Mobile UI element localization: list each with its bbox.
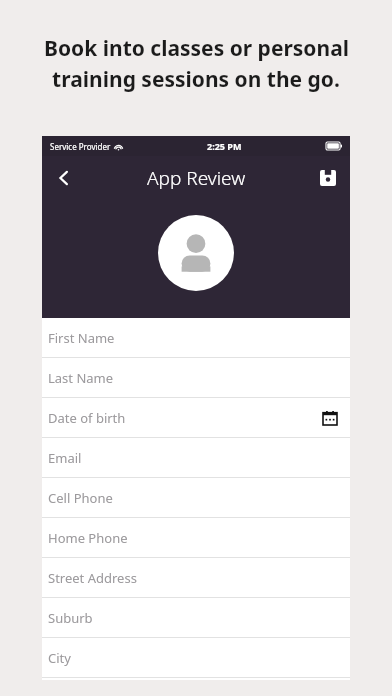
staticText: Service Provider [50,141,111,152]
staticText: 2:25 PM [207,140,242,152]
staticText: City [48,649,71,667]
button[interactable]: Cell Phone [42,478,350,518]
staticText: training sessions on the go. [52,65,340,94]
button[interactable]: Profile photo [158,215,234,291]
staticText: Last Name [48,369,114,387]
staticText: Street Address [48,569,137,587]
staticText: Email [48,449,82,467]
staticText: First Name [48,329,115,347]
button[interactable]: Home Phone [42,518,350,558]
staticText: Date of birth [48,409,126,427]
button[interactable]: First Name [42,318,350,358]
button[interactable]: City [42,638,350,678]
button[interactable]: Suburb [42,598,350,638]
button[interactable]: Date of birth [42,398,350,438]
other: Pick date [320,408,340,428]
staticText: Book into classes or personal [44,34,349,63]
staticText: Cell Phone [48,489,113,507]
button[interactable]: Save [306,156,350,200]
staticText: App Review [147,165,246,191]
button[interactable]: Back [42,156,86,200]
button[interactable]: Last Name [42,358,350,398]
staticText: Suburb [48,609,93,627]
button[interactable]: Street Address [42,558,350,598]
button[interactable]: Email [42,438,350,478]
staticText: Home Phone [48,529,128,547]
